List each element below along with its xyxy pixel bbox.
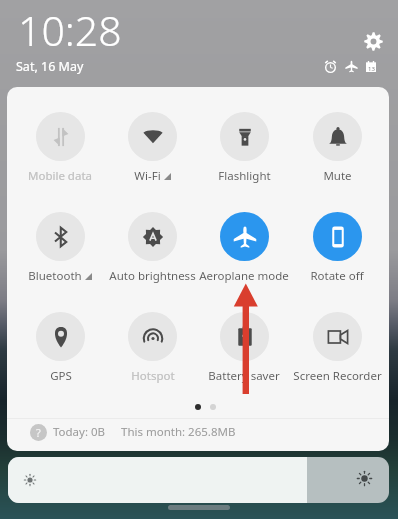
button[interactable]: Bluetooth — [14, 212, 106, 284]
button[interactable]: Wi-Fi — [106, 112, 198, 184]
staticText: Mute — [323, 168, 352, 184]
button[interactable]: Screen Recorder — [291, 312, 383, 384]
button[interactable]: Auto brightness — [106, 212, 198, 284]
button[interactable]: GPS — [14, 312, 106, 384]
button[interactable]: Rotate off — [291, 212, 383, 284]
staticText: Today: 0B — [53, 424, 106, 440]
staticText: This month: 265.8MB — [121, 424, 236, 440]
staticText: Screen Recorder — [293, 368, 382, 384]
staticText: Rotate off — [310, 268, 364, 284]
staticText: Sat, 16 May — [16, 58, 84, 75]
button[interactable]: Mobile data — [14, 112, 106, 184]
button[interactable]: Hotspot — [106, 312, 198, 384]
staticText: GPS — [50, 368, 72, 384]
staticText: Aeroplane mode — [199, 268, 289, 284]
staticText: Bluetooth — [28, 268, 82, 284]
button[interactable]: Mute — [291, 112, 383, 184]
staticText: Battery saver — [208, 368, 280, 384]
staticText: Hotspot — [131, 368, 175, 384]
button[interactable]: Flashlight — [198, 112, 290, 184]
button[interactable]: Brightness — [8, 457, 389, 503]
staticText: Mobile data — [28, 168, 92, 184]
staticText: Flashlight — [218, 168, 271, 184]
staticText: 10:28 — [18, 2, 122, 58]
staticText: ? — [36, 425, 41, 440]
button[interactable]: Aeroplane mode — [198, 212, 290, 284]
staticText: 13 — [368, 65, 375, 73]
button[interactable]: Settings — [357, 25, 389, 57]
staticText: Auto brightness — [109, 268, 196, 284]
button[interactable]: Battery saver — [198, 312, 290, 384]
staticText: Wi-Fi — [134, 168, 161, 184]
